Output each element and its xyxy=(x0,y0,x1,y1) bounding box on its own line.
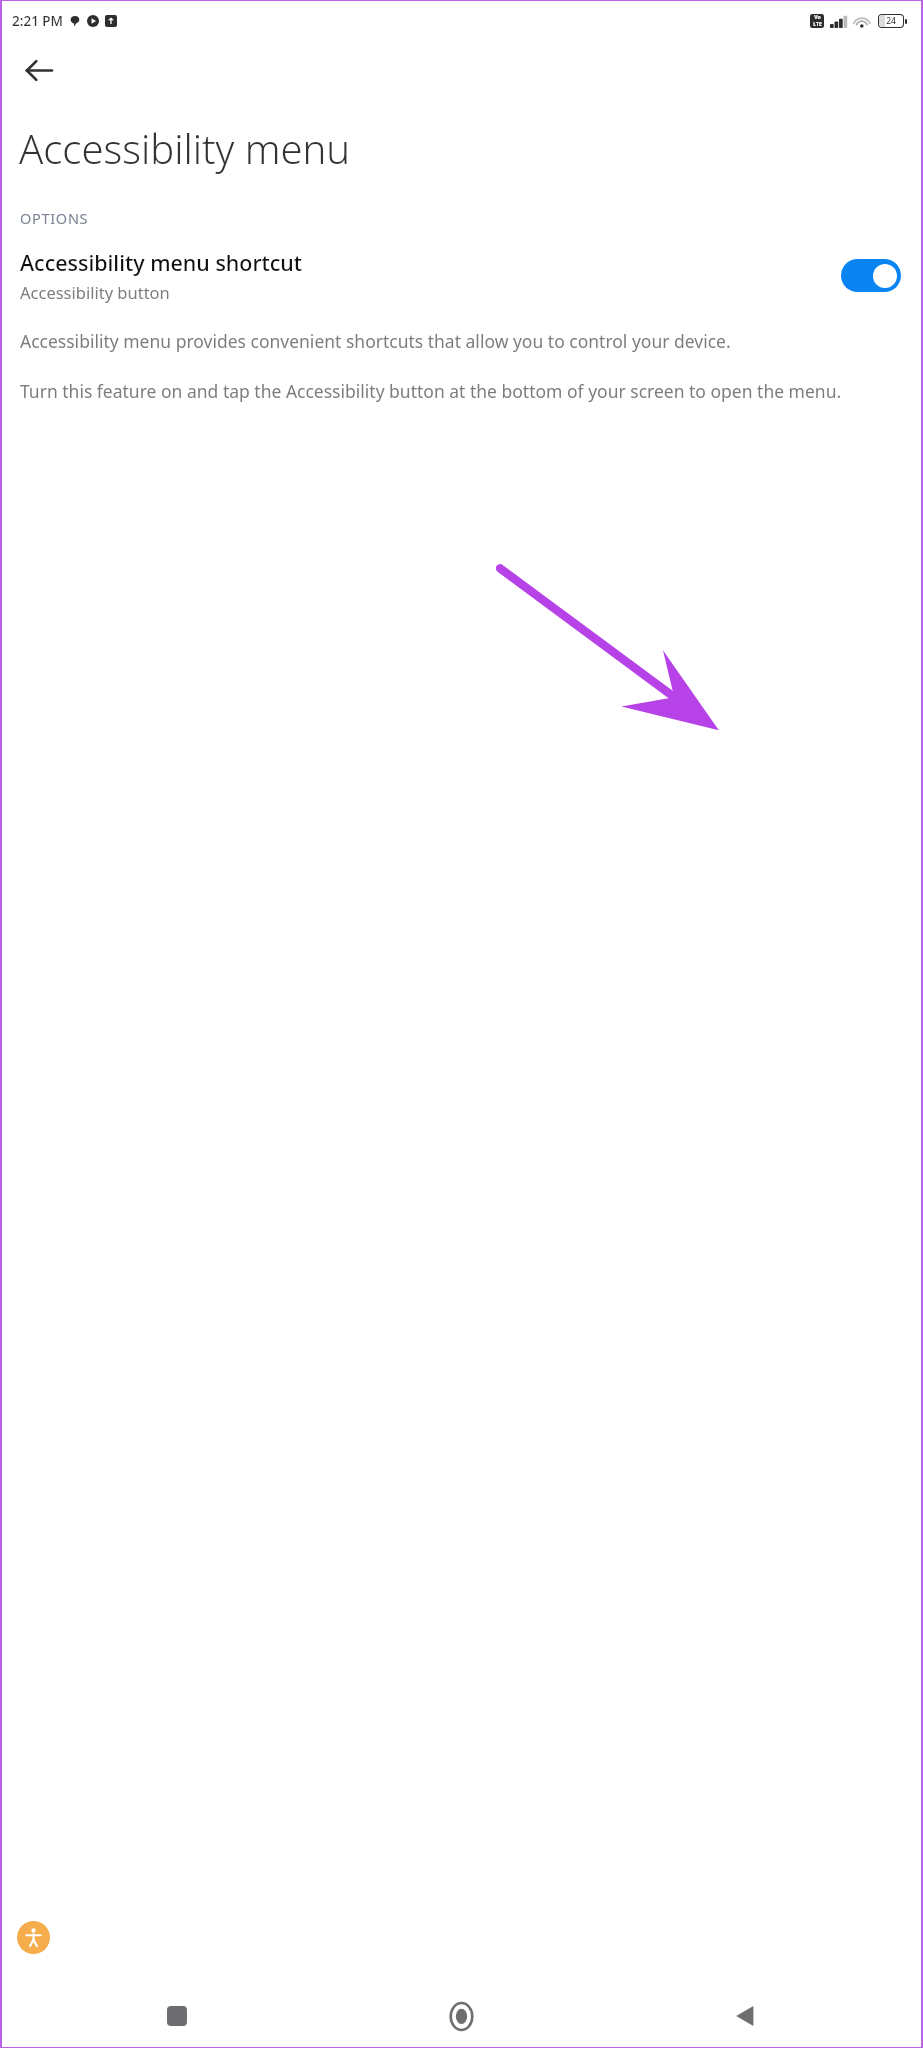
staticText: 24 xyxy=(886,15,896,27)
button[interactable]: Back xyxy=(719,1990,771,2042)
staticText: OPTIONS xyxy=(20,208,89,228)
staticText: Vo xyxy=(814,14,821,21)
button[interactable]: Accessibility button xyxy=(11,1915,55,1959)
staticText: Accessibility menu shortcut xyxy=(20,248,303,277)
button[interactable]: Back xyxy=(14,46,62,94)
button[interactable]: Accessibility menu shortcut xyxy=(2,248,921,303)
staticText: LTE xyxy=(813,21,822,28)
button[interactable]: Home xyxy=(435,1990,487,2042)
staticText: 2:21 PM xyxy=(12,12,63,30)
staticText: Accessibility menu xyxy=(19,121,351,175)
staticText: Accessibility menu provides convenient s… xyxy=(20,329,731,353)
staticText: Accessibility button xyxy=(20,281,170,303)
button[interactable]: Accessibility menu shortcut toggle, on xyxy=(841,259,901,292)
staticText: Turn this feature on and tap the Accessi… xyxy=(20,379,842,403)
button[interactable]: Recent apps xyxy=(151,1990,203,2042)
